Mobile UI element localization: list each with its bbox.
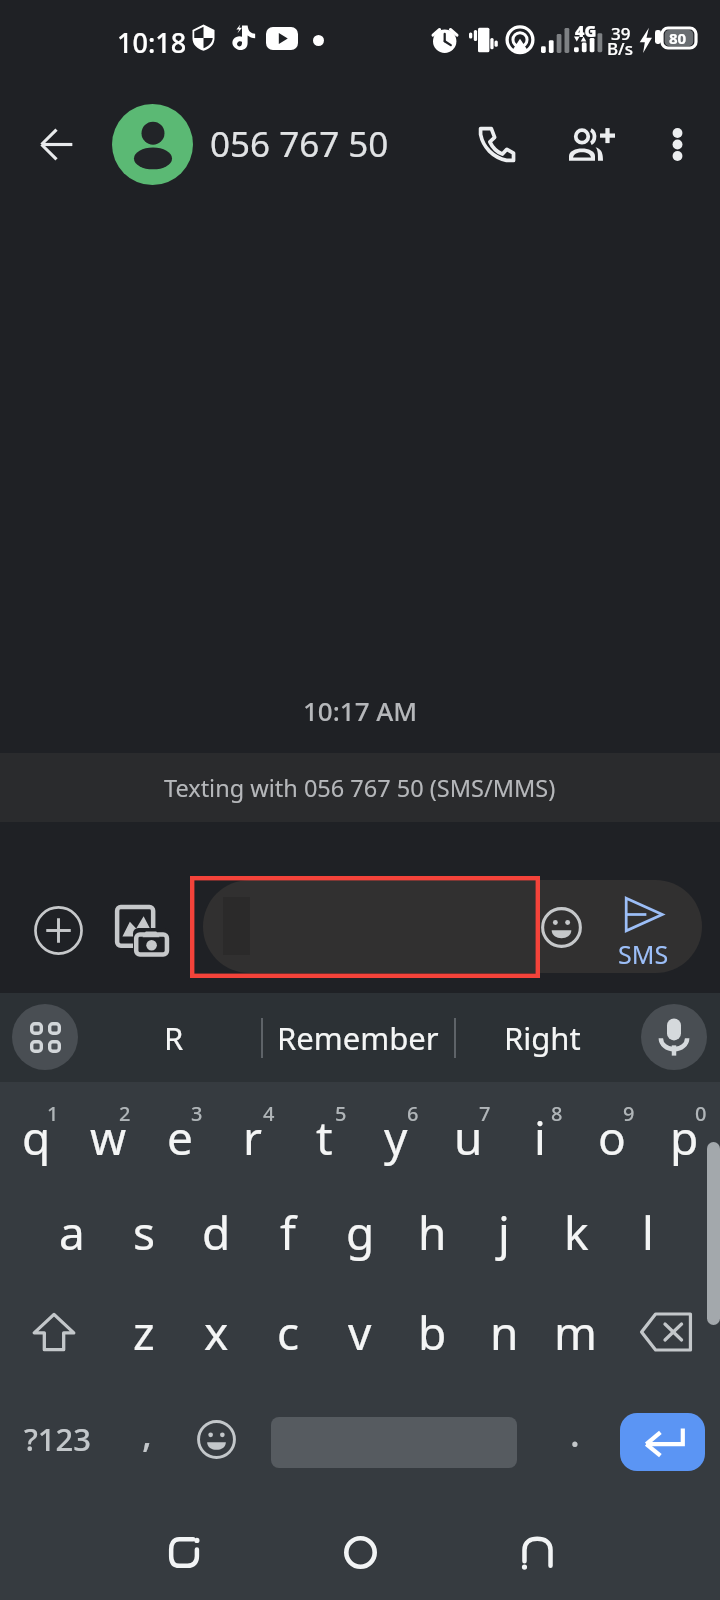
button[interactable]: r <box>216 1082 288 1182</box>
staticText: SMS <box>618 937 669 971</box>
staticText: 4G <box>575 20 597 42</box>
button[interactable]: c <box>252 1282 324 1382</box>
staticText: w <box>90 1106 127 1169</box>
staticText: t <box>316 1106 333 1169</box>
button[interactable]: Shift <box>0 1282 108 1382</box>
staticText: 4 <box>263 1100 275 1127</box>
staticText: d <box>202 1201 231 1264</box>
button[interactable]: l <box>612 1182 684 1282</box>
button[interactable]: Voice input <box>641 1004 707 1070</box>
button[interactable]: h <box>396 1182 468 1282</box>
staticText: 3 <box>191 1100 203 1127</box>
button[interactable]: b <box>396 1282 468 1382</box>
button[interactable]: SMS <box>597 896 689 971</box>
staticText: e <box>167 1106 193 1169</box>
staticText: k <box>564 1201 589 1264</box>
staticText: h <box>418 1201 447 1264</box>
staticText: y <box>384 1106 408 1169</box>
staticText: R <box>164 1017 184 1059</box>
staticText: s <box>133 1201 156 1264</box>
button[interactable]: p <box>648 1082 720 1182</box>
staticText: B/s <box>607 37 633 60</box>
button[interactable]: j <box>468 1182 540 1282</box>
button[interactable]: ?123 <box>0 1382 116 1496</box>
staticText: 0 <box>695 1100 707 1127</box>
staticText: x <box>204 1301 229 1364</box>
button[interactable]: Remember <box>265 993 450 1082</box>
staticText: Right <box>504 1017 581 1059</box>
button[interactable]: e <box>144 1082 216 1182</box>
button[interactable]: Home <box>315 1507 405 1597</box>
button[interactable] <box>203 880 702 973</box>
staticText: u <box>454 1106 483 1169</box>
button[interactable]: q <box>0 1082 72 1182</box>
staticText: . <box>570 1409 580 1458</box>
button[interactable]: Backspace <box>612 1282 720 1382</box>
staticText: 1 <box>47 1100 59 1127</box>
button[interactable]: R <box>115 993 233 1082</box>
button[interactable]: Toolbar <box>12 1004 78 1070</box>
staticText: , <box>142 1409 152 1458</box>
button[interactable]: Right <box>460 993 625 1082</box>
staticText: 7 <box>479 1100 491 1127</box>
staticText: j <box>498 1201 510 1264</box>
staticText: 9 <box>623 1100 635 1127</box>
button[interactable]: a <box>36 1182 108 1282</box>
staticText: q <box>22 1106 51 1169</box>
button[interactable]: 056 767 50 <box>112 88 389 200</box>
staticText: 5 <box>335 1100 347 1127</box>
staticText: Texting with 056 767 50 (SMS/MMS) <box>164 772 556 804</box>
staticText: i <box>534 1106 546 1169</box>
staticText: v <box>348 1301 372 1364</box>
staticText: ?123 <box>24 1418 92 1460</box>
staticText: g <box>346 1201 375 1264</box>
button[interactable]: y <box>360 1082 432 1182</box>
staticText: 80 <box>669 28 687 48</box>
staticText: 056 767 50 <box>210 120 389 168</box>
button[interactable]: n <box>468 1282 540 1382</box>
staticText: 10:18 <box>117 24 187 61</box>
button[interactable]: i <box>504 1082 576 1182</box>
staticText: 39 <box>611 22 631 45</box>
button[interactable]: m <box>540 1282 612 1382</box>
button[interactable]: f <box>252 1182 324 1282</box>
staticText: Remember <box>277 1017 439 1059</box>
staticText: 10:17 AM <box>303 693 418 728</box>
button[interactable]: Call <box>456 104 536 184</box>
button[interactable]: g <box>324 1182 396 1282</box>
button[interactable]: Enter <box>620 1413 705 1471</box>
button[interactable]: o <box>576 1082 648 1182</box>
button[interactable]: Back <box>12 100 100 188</box>
button[interactable]: Add attachment <box>34 906 83 955</box>
button[interactable]: Recent apps <box>139 1507 229 1597</box>
button[interactable]: v <box>324 1282 396 1382</box>
button[interactable]: s <box>108 1182 180 1282</box>
button[interactable]: d <box>180 1182 252 1282</box>
button[interactable]: w <box>72 1082 144 1182</box>
button[interactable]: x <box>180 1282 252 1382</box>
button[interactable]: Space <box>254 1382 544 1496</box>
staticText: r <box>243 1106 262 1169</box>
staticText: o <box>598 1106 626 1169</box>
button[interactable]: , <box>116 1382 178 1496</box>
button[interactable]: Emoji keyboard <box>178 1382 254 1496</box>
staticText: 6 <box>407 1100 419 1127</box>
staticText: c <box>277 1301 300 1364</box>
button[interactable]: k <box>540 1182 612 1282</box>
staticText: 2 <box>119 1100 131 1127</box>
staticText: m <box>554 1301 598 1364</box>
button[interactable]: t <box>288 1082 360 1182</box>
button[interactable]: Add people <box>552 104 632 184</box>
button[interactable]: . <box>544 1382 606 1496</box>
button[interactable]: More options <box>640 107 714 181</box>
staticText: a <box>59 1201 85 1264</box>
button[interactable]: Back <box>492 1507 582 1597</box>
button[interactable]: z <box>108 1282 180 1382</box>
staticText: p <box>670 1106 699 1169</box>
button[interactable]: u <box>432 1082 504 1182</box>
button[interactable]: Gallery <box>115 905 168 956</box>
staticText: f <box>280 1201 296 1264</box>
staticText: z <box>133 1301 155 1364</box>
button[interactable]: Emoji <box>541 907 582 948</box>
staticText: n <box>490 1301 519 1364</box>
